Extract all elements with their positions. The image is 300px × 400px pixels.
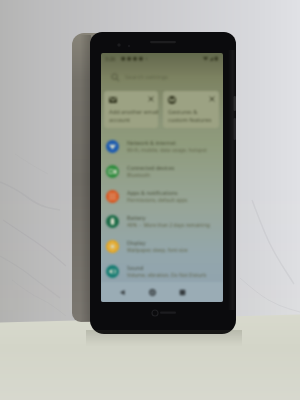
staticText: Apps & notifications: [127, 189, 178, 196]
button[interactable]: Recent apps: [173, 283, 191, 301]
button[interactable]: Display: [101, 234, 223, 259]
staticText: Gestures & custom features: [168, 108, 212, 124]
button[interactable]: Search settings: [101, 65, 223, 89]
staticText: Permissions, default apps: [127, 197, 188, 204]
button[interactable]: Dismiss suggestion: [163, 91, 219, 128]
staticText: Wallpaper, sleep, font size: [127, 247, 188, 254]
button[interactable]: Dismiss suggestion: [208, 95, 216, 103]
staticText: Add another email account: [109, 108, 158, 124]
staticText: 49% - More than 2 days remaining: [127, 222, 210, 229]
staticText: Connected devices: [127, 164, 175, 171]
staticText: Battery: [127, 214, 146, 221]
staticText: 3:26: [105, 55, 116, 62]
button[interactable]: Back: [113, 283, 131, 301]
button[interactable]: Battery: [101, 209, 223, 234]
button[interactable]: Dismiss suggestion: [104, 91, 158, 128]
button[interactable]: Apps & notifications: [101, 184, 223, 209]
staticText: Network & internet: [127, 139, 176, 146]
staticText: Sound: [127, 264, 144, 271]
button[interactable]: Home: [143, 283, 161, 301]
staticText: Wi-Fi, mobile, data usage, hotspot: [127, 147, 207, 154]
button[interactable]: Network & internet: [101, 134, 223, 159]
button[interactable]: Connected devices: [101, 159, 223, 184]
staticText: Bluetooth: [127, 172, 151, 179]
button[interactable]: Dismiss suggestion: [147, 95, 155, 103]
staticText: Display: [127, 239, 146, 246]
button[interactable]: Sound: [101, 259, 223, 284]
staticText: Volume, vibration, Do Not Disturb: [127, 272, 207, 279]
